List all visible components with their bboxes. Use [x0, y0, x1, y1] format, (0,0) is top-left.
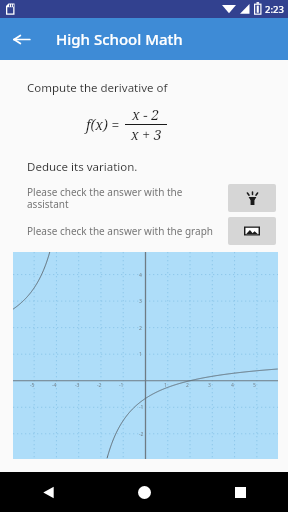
staticText: -1	[119, 382, 124, 389]
button[interactable]: Back	[0, 472, 96, 512]
button[interactable]: Check answer with graph	[228, 217, 276, 245]
staticText: Please check the answer with the assista…	[27, 185, 216, 211]
staticText: -3	[75, 382, 80, 389]
staticText: -5	[30, 382, 35, 389]
button[interactable]: Recent apps	[192, 472, 288, 512]
staticText: 5	[253, 382, 256, 389]
staticText: 2:23	[265, 3, 284, 16]
staticText: Compute the derivative of	[27, 80, 168, 96]
staticText: 1	[139, 351, 142, 358]
staticText: x − 2	[132, 105, 160, 124]
staticText: High School Math	[56, 29, 183, 49]
staticText: -4	[52, 382, 57, 389]
staticText: 4	[231, 382, 234, 389]
staticText: Please check the answer with the graph	[27, 224, 216, 238]
staticText: 1	[164, 382, 167, 389]
staticText: Deduce its variation.	[27, 159, 138, 175]
button[interactable]: Home	[96, 472, 192, 512]
staticText: 3	[208, 382, 211, 389]
staticText: -2	[139, 431, 144, 438]
button[interactable]: Navigate up	[0, 18, 42, 60]
button[interactable]: Check answer with assistant	[228, 184, 276, 212]
staticText: 2	[186, 382, 189, 389]
staticText: -2	[97, 382, 102, 389]
staticText: f(x) =	[86, 115, 120, 134]
staticText: 3	[139, 298, 142, 305]
staticText: 2	[139, 325, 142, 332]
staticText: -1	[139, 404, 144, 411]
staticText: x + 3	[131, 125, 162, 144]
staticText: 4	[139, 272, 142, 279]
